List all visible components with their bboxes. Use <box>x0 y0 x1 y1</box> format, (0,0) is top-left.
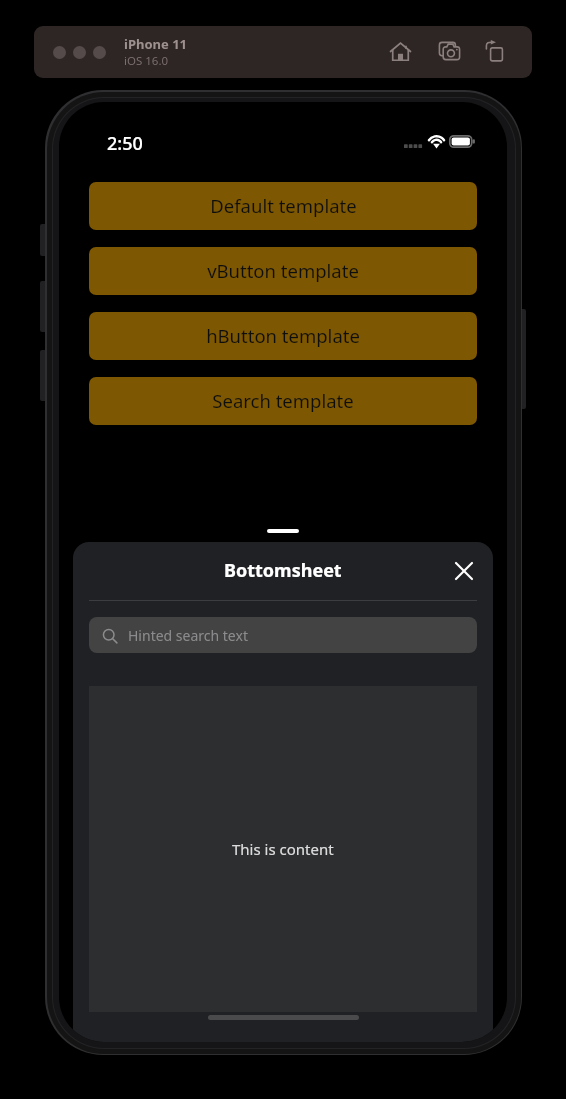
staticText: Hinted search text <box>128 626 248 645</box>
button[interactable]: Default template <box>89 182 477 230</box>
button[interactable]: Search template <box>89 377 477 425</box>
button[interactable]: Rotate <box>480 36 510 66</box>
staticText: vButton template <box>207 258 359 283</box>
staticText: Default template <box>210 193 357 218</box>
button[interactable]: Screenshot <box>434 36 464 66</box>
staticText: hButton template <box>206 323 360 348</box>
button[interactable]: vButton template <box>89 247 477 295</box>
staticText: 2:50 <box>107 131 143 156</box>
button[interactable]: hButton template <box>89 312 477 360</box>
staticText: iOS 16.0 <box>124 53 169 69</box>
button[interactable]: Hinted search text <box>89 617 477 653</box>
staticText: Bottomsheet <box>224 558 342 583</box>
staticText: This is content <box>232 839 334 859</box>
staticText: Search template <box>212 388 354 413</box>
button[interactable]: Home <box>385 36 415 66</box>
staticText: iPhone 11 <box>124 35 187 53</box>
button[interactable]: Close <box>447 554 481 588</box>
